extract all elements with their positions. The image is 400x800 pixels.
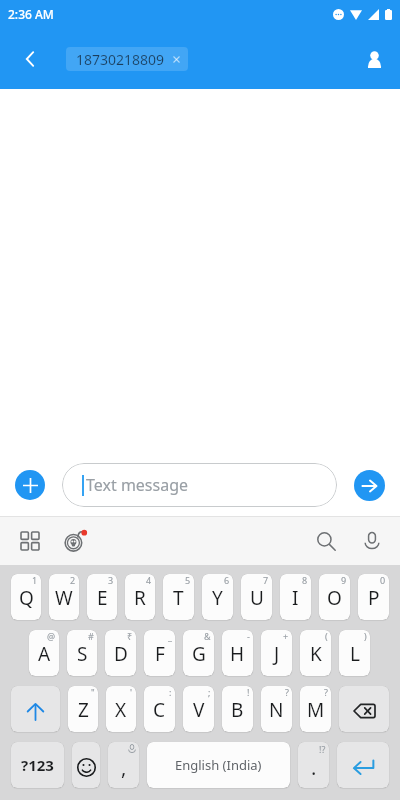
button[interactable]: Search [309,524,343,558]
button[interactable]: Y [202,574,233,620]
button[interactable]: Q [11,574,41,620]
staticText: 5 [185,574,191,586]
button[interactable]: Text message [62,463,337,507]
staticText: E [97,585,108,611]
button[interactable]: P [358,574,389,620]
button[interactable]: Period [298,742,329,788]
staticText: 18730218809 [76,50,165,69]
button[interactable]: W [49,574,79,620]
staticText: @ [47,630,56,642]
staticText: , [121,754,127,781]
staticText: 2:36 AM [8,6,54,22]
staticText: 9 [341,574,347,586]
staticText: C [153,697,166,723]
staticText: G [192,641,206,667]
button[interactable]: Back [9,38,51,80]
staticText: 6 [224,574,230,586]
staticText: Text message [86,474,189,496]
button[interactable]: Z [68,686,98,732]
button[interactable]: F [144,630,175,676]
button[interactable]: U [241,574,272,620]
staticText: V [193,697,205,723]
staticText: 1 [32,574,38,586]
button[interactable]: B [222,686,253,732]
staticText: Q [19,585,34,611]
staticText: R [134,585,146,611]
staticText: - [247,630,250,642]
staticText: M [307,697,325,723]
staticText: 8 [302,574,308,586]
staticText: T [173,585,184,611]
button[interactable]: M [300,686,331,732]
button[interactable]: Comma [108,742,139,788]
staticText: D [114,641,128,667]
staticText: ₹ [127,630,133,642]
button[interactable]: O [319,574,350,620]
button[interactable]: G [183,630,214,676]
button[interactable]: Shift [11,686,60,732]
staticText: 7 [263,574,269,586]
staticText: ; [208,686,211,698]
staticText: P [368,585,380,611]
staticText: Y [212,585,223,611]
staticText: !? [319,743,326,755]
button[interactable]: Stickers [58,523,93,558]
button[interactable]: H [222,630,253,676]
button[interactable]: N [261,686,292,732]
button[interactable]: Enter [337,742,389,788]
button[interactable]: Emoji [72,742,100,788]
staticText: S [77,641,88,667]
staticText: # [88,630,94,642]
button[interactable]: Add attachment [15,470,45,500]
staticText: 4 [146,574,152,586]
button[interactable]: A [29,630,59,676]
staticText: U [250,585,264,611]
button[interactable]: T [163,574,194,620]
staticText: L [350,641,360,667]
staticText: English (India) [175,756,262,774]
button[interactable]: Contact details [352,37,396,81]
staticText: ( [325,630,328,642]
button[interactable]: E [87,574,117,620]
staticText: 3 [108,574,114,586]
staticText: + [283,630,289,642]
staticText: " [91,686,95,698]
staticText: ?123 [21,755,54,775]
button[interactable]: 18730218809 [66,47,188,71]
staticText: X [115,697,127,723]
button[interactable]: J [261,630,292,676]
staticText: W [55,585,73,611]
staticText: ! [247,686,250,698]
button[interactable]: Space [147,742,290,788]
staticText: I [292,585,299,611]
button[interactable]: L [339,630,370,676]
staticText: H [230,641,245,667]
staticText: K [310,641,322,667]
staticText: . [311,754,317,781]
staticText: ' [130,686,133,698]
button[interactable]: D [105,630,136,676]
button[interactable]: I [280,574,311,620]
staticText: O [327,585,342,611]
staticText: J [274,641,280,667]
staticText: ? [324,686,328,698]
staticText: A [38,641,51,667]
button[interactable]: Backspace [339,686,389,732]
staticText: 0 [380,574,386,586]
staticText: 2 [70,574,76,586]
button[interactable]: Voice input [355,524,389,558]
button[interactable]: S [67,630,97,676]
staticText: N [269,697,284,723]
staticText: Z [78,697,89,723]
button[interactable]: K [300,630,331,676]
button[interactable]: Symbols [11,742,64,788]
button[interactable]: X [106,686,136,732]
button[interactable]: R [125,574,155,620]
staticText: B [231,697,244,723]
button[interactable]: V [183,686,214,732]
button[interactable]: Send message [354,470,385,501]
button[interactable]: Apps [12,523,47,558]
staticText: ) [364,630,367,642]
staticText: : [169,686,172,698]
button[interactable]: C [144,686,175,732]
